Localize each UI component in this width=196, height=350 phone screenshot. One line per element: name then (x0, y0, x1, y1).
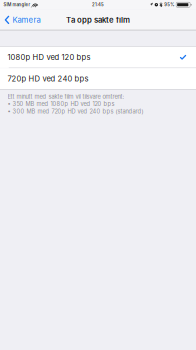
staticText: Ett minutt med sakte film vil tilsvare o… (8, 93, 125, 100)
staticText: 95% (164, 2, 174, 7)
staticText: 1080p HD ved 120 bps (8, 53, 91, 62)
staticText: Ta opp sakte film (66, 15, 130, 25)
staticText: 720p HD ved 240 bps (8, 74, 89, 83)
staticText: • 300 MB med 720p HD ved 240 bps (standa… (8, 108, 144, 115)
staticText: 21:45 (92, 2, 104, 7)
button[interactable]: 720p HD ved 240 bps (0, 68, 196, 89)
button[interactable]: Kamera (0, 9, 44, 30)
staticText: Kamera (12, 15, 40, 24)
staticText: SIM mangler (3, 2, 30, 7)
button[interactable]: 1080p HD ved 120 bps (0, 47, 196, 68)
staticText: • 350 MB med 1080p HD ved 120 bps (8, 101, 115, 107)
